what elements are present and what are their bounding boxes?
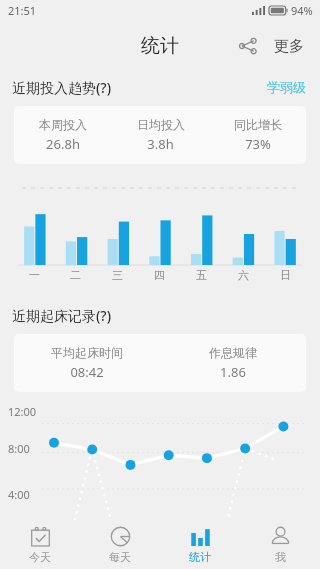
button[interactable]: 今天 [0,520,80,569]
button[interactable]: 我 [240,520,320,569]
staticText: 12:00 [8,404,37,419]
staticText: 三 [112,268,123,282]
staticText: 统计 [141,34,179,58]
staticText: 一 [29,268,40,282]
staticText: 每天 [109,550,131,564]
staticText: 统计 [189,550,211,564]
staticText: 26.8h [46,135,80,153]
staticText: 08:42 [70,363,104,381]
button[interactable]: Share [230,28,266,64]
staticText: 8:00 [8,441,30,456]
button[interactable]: 学弱级 [265,75,308,99]
staticText: 本周投入 [39,117,87,132]
staticText: 94% [291,3,313,18]
button[interactable]: 本周投入 [14,106,306,164]
staticText: 近期起床记录(?) [12,306,111,325]
staticText: 4:00 [8,487,30,502]
staticText: 1.86 [220,363,246,381]
staticText: 二 [70,268,81,282]
staticText: 同比增长 [234,117,282,132]
button[interactable]: 平均起床时间 [14,334,306,392]
staticText: 日均投入 [137,117,185,132]
staticText: 作息规律 [209,345,257,360]
button[interactable]: 更多 [268,31,310,62]
staticText: 平均起床时间 [51,345,123,360]
staticText: 21:51 [8,3,37,18]
staticText: 六 [238,268,249,282]
staticText: 3.8h [147,135,174,153]
button[interactable]: 每天 [80,520,160,569]
staticText: 近期投入趋势(?) [12,78,111,97]
staticText: 73% [245,135,271,153]
staticText: 更多 [274,37,304,56]
staticText: 我 [275,550,286,564]
staticText: 五 [196,268,207,282]
staticText: 四 [154,268,165,282]
button[interactable]: 统计 [160,520,240,569]
staticText: 日 [280,268,291,282]
staticText: 今天 [29,550,51,564]
staticText: 学弱级 [267,79,306,95]
